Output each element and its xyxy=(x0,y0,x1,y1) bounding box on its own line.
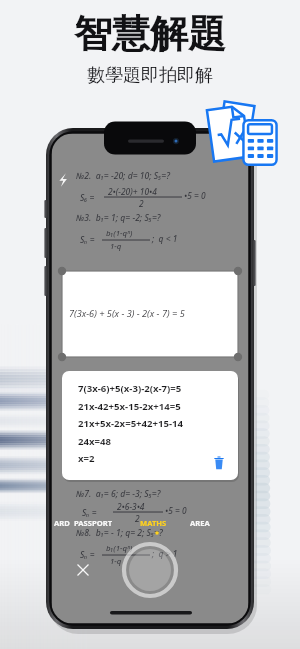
button[interactable]: Area mode xyxy=(185,510,223,528)
button[interactable]: Delete solution xyxy=(212,455,236,479)
button[interactable]: Passport mode xyxy=(70,510,128,528)
button[interactable]: Maths mode xyxy=(136,510,180,528)
button[interactable]: Card mode xyxy=(46,510,80,528)
button[interactable]: Toggle flash xyxy=(55,168,77,192)
button[interactable]: Close xyxy=(70,556,98,584)
button[interactable]: Solution steps card xyxy=(62,371,238,480)
button[interactable]: Shutter xyxy=(120,540,180,600)
